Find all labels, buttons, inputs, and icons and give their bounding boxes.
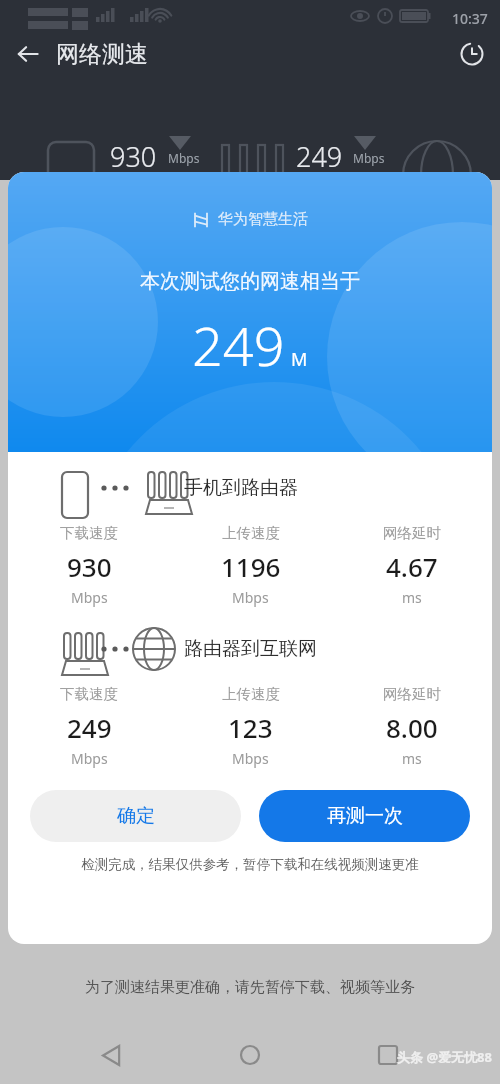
staticText: 249 — [192, 308, 285, 382]
button[interactable]: Back — [86, 1029, 138, 1081]
staticText: Mbps — [353, 150, 385, 166]
staticText: 检测完成，结果仅供参考，暂停下载和在线视频测速更准 — [8, 856, 492, 873]
staticText: 下载速度 — [60, 685, 118, 703]
staticText: 头条 @爱无忧88 — [397, 1048, 492, 1066]
staticText: ms — [402, 588, 422, 607]
staticText: 4.67 — [386, 549, 438, 584]
staticText: 网络延时 — [383, 685, 441, 703]
staticText: ms — [402, 749, 422, 768]
button[interactable]: Back — [0, 36, 56, 72]
staticText: 华为智慧生活 — [218, 210, 308, 229]
staticText: 下载速度 — [60, 524, 118, 542]
staticText: 8.00 — [386, 710, 438, 745]
staticText: 路由器到互联网 — [184, 637, 317, 661]
staticText: 为了测速结果更准确，请先暂停下载、视频等业务 — [0, 978, 500, 997]
staticText: 手机到路由器 — [184, 476, 298, 500]
staticText: 1196 — [221, 549, 281, 584]
button[interactable]: Recents — [362, 1029, 414, 1081]
staticText: 本次测试您的网速相当于 — [8, 269, 492, 294]
button[interactable]: 确定 — [30, 790, 241, 842]
staticText: 10:37 — [452, 9, 488, 28]
staticText: 再测一次 — [327, 804, 403, 828]
staticText: 930 — [110, 138, 157, 175]
staticText: 确定 — [117, 804, 155, 828]
staticText: Mbps — [168, 150, 200, 166]
staticText: 249 — [67, 710, 112, 745]
staticText: 249 — [296, 138, 343, 175]
button[interactable]: 再测一次 — [259, 790, 470, 842]
staticText: M — [291, 347, 308, 372]
staticText: 上传速度 — [222, 685, 280, 703]
staticText: Mbps — [232, 588, 269, 607]
staticText: 网络延时 — [383, 524, 441, 542]
staticText: Mbps — [71, 588, 108, 607]
staticText: 网络测速 — [56, 40, 148, 69]
staticText: Mbps — [71, 749, 108, 768]
staticText: 123 — [228, 710, 273, 745]
staticText: 上传速度 — [222, 524, 280, 542]
staticText: Mbps — [232, 749, 269, 768]
button[interactable]: Home — [224, 1029, 276, 1081]
button[interactable]: History — [444, 36, 500, 72]
staticText: 930 — [67, 549, 112, 584]
